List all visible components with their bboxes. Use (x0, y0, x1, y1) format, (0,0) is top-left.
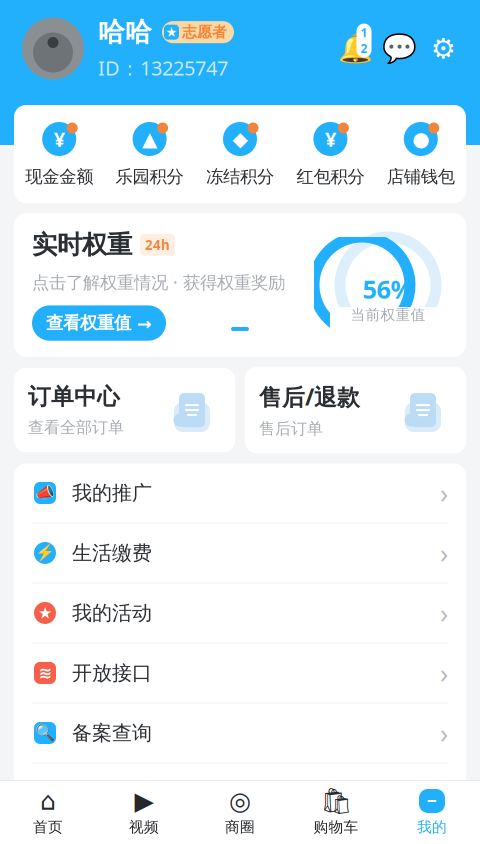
staticText: 备案查询 (72, 721, 152, 745)
staticText: 商圈 (225, 818, 255, 836)
staticText: 现金金额 (25, 166, 93, 187)
staticText: 视频 (129, 818, 159, 836)
staticText: ● (412, 128, 429, 150)
staticText: 实时权重 (32, 229, 132, 260)
button[interactable]: ¥ (14, 121, 104, 187)
staticText: 查看权重值 → (46, 312, 152, 334)
button[interactable]: ◆ (195, 121, 285, 187)
staticText: ⌂ (40, 787, 56, 815)
staticText: 📣 (35, 484, 55, 502)
button[interactable]: ◆ (14, 823, 466, 844)
staticText: 开放接口 (72, 661, 152, 685)
staticText: 订单中心 (28, 383, 120, 411)
button[interactable]: 消息 (382, 31, 416, 65)
button[interactable]: ⚡ (14, 523, 466, 582)
button[interactable]: 设置 (426, 31, 460, 65)
staticText: 12 (360, 25, 367, 56)
staticText: 💬 (35, 784, 55, 802)
staticText: 点击了解权重情况 · 获得权重奖励 (32, 270, 285, 293)
button[interactable]: 🛍 (288, 788, 384, 836)
staticText: 生活缴费 (72, 541, 152, 565)
staticText: ⚡ (35, 544, 55, 562)
button[interactable]: ▶ (96, 788, 192, 836)
button[interactable]: 我的 (384, 788, 480, 836)
staticText: 红包积分 (296, 166, 364, 187)
staticText: 🔔 (337, 32, 372, 64)
staticText: ▶ (134, 787, 153, 815)
button[interactable]: 🔍 (14, 703, 466, 762)
staticText: 志愿者 (182, 23, 227, 41)
staticText: › (440, 655, 448, 691)
staticText: 售后/退款 (259, 382, 360, 412)
button[interactable]: ◎ (192, 788, 288, 836)
staticText: › (440, 775, 448, 811)
staticText: 予集IM (72, 780, 137, 806)
staticText: ◆ (232, 128, 247, 150)
staticText: ¥ (325, 126, 336, 152)
staticText: ★ (38, 604, 52, 622)
button[interactable]: 订单中心 (14, 368, 235, 452)
staticText: › (440, 535, 448, 571)
staticText: ★ (165, 25, 177, 40)
staticText: 🛍 (320, 786, 352, 815)
staticText: 我的活动 (72, 601, 152, 625)
button[interactable]: ¥ (285, 121, 376, 187)
button[interactable]: ⌂ (0, 788, 96, 836)
staticText: ≋ (38, 664, 51, 682)
staticText: › (440, 475, 448, 511)
staticText: 🔍 (35, 724, 55, 742)
button[interactable]: 售后/退款 (245, 367, 466, 453)
staticText: 哈哈 (98, 16, 152, 49)
button[interactable]: ≋ (14, 643, 466, 702)
button[interactable]: ▲ (104, 121, 195, 187)
staticText: 56% (362, 272, 413, 306)
staticText: 乐园积分 (116, 166, 184, 187)
button[interactable]: 📣 (14, 463, 466, 522)
staticText: ⚙ (430, 33, 455, 64)
button[interactable]: 实时权重 (14, 213, 466, 357)
staticText: ◎ (229, 787, 251, 815)
staticText: 24h (145, 236, 170, 254)
button[interactable]: 💬 (14, 763, 466, 822)
staticText: 冻结积分 (206, 166, 274, 187)
staticText: › (440, 715, 448, 751)
button[interactable]: 通知 (338, 31, 372, 65)
staticText: 首页 (33, 818, 63, 836)
staticText: › (440, 595, 448, 631)
staticText: 购物车 (313, 818, 358, 836)
staticText: 当前权重值 (350, 306, 425, 324)
button[interactable]: ★ (14, 583, 466, 642)
staticText: 查看全部订单 (28, 418, 124, 437)
button[interactable]: ● (376, 121, 466, 187)
staticText: 店铺钱包 (387, 166, 455, 187)
staticText: 售后订单 (259, 419, 323, 438)
staticText: 我的 (417, 818, 447, 836)
staticText: 💬 (381, 32, 416, 64)
staticText: 我的推广 (72, 481, 152, 505)
staticText: ID：13225747 (98, 54, 228, 81)
staticText: ▲ (142, 128, 157, 150)
staticText: ¥ (54, 126, 65, 152)
